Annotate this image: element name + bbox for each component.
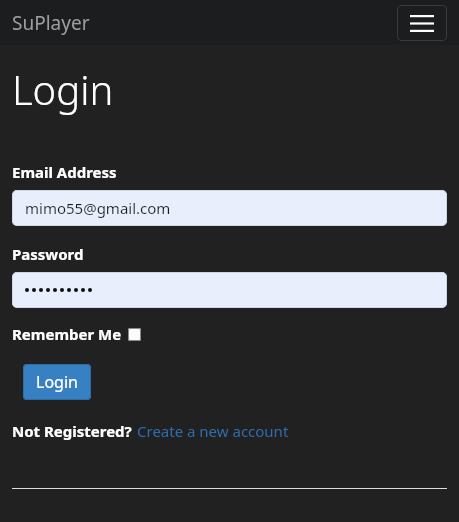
button[interactable]: Create a new account: [137, 421, 289, 441]
button[interactable]: Toggle navigation menu: [397, 5, 447, 41]
staticText: Remember Me: [12, 324, 122, 344]
button[interactable]: Remember Me: [12, 324, 141, 344]
button[interactable]: mimo55@gmail.com: [12, 190, 447, 226]
button[interactable]: SuPlayer: [12, 10, 90, 36]
staticText: Create a new account: [137, 421, 289, 441]
staticText: Login: [12, 62, 114, 116]
staticText: Not Registered?: [12, 421, 132, 441]
staticText: mimo55@gmail.com: [25, 198, 171, 218]
staticText: Email Address: [12, 162, 117, 182]
button[interactable]: [12, 272, 447, 308]
staticText: Login: [36, 371, 78, 393]
button[interactable]: Login: [23, 364, 91, 400]
staticText: Password: [12, 244, 84, 264]
